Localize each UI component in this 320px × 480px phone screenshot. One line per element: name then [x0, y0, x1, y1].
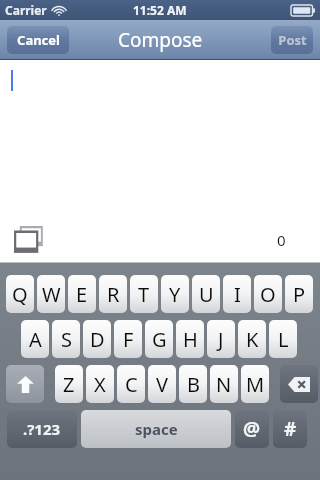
staticText: F [123, 326, 134, 353]
button[interactable]: G [145, 320, 173, 358]
staticText: K [246, 326, 259, 353]
button[interactable]: F [114, 320, 142, 358]
staticText: P [293, 281, 306, 308]
button[interactable]: J [207, 320, 235, 358]
staticText: space [135, 419, 178, 439]
button[interactable]: A [21, 320, 49, 358]
staticText: Post [278, 31, 307, 49]
staticText: J [218, 326, 224, 353]
staticText: O [260, 281, 276, 308]
button[interactable]: Y [161, 275, 189, 313]
button[interactable]: .?123 [7, 410, 77, 448]
staticText: A [29, 326, 42, 353]
button[interactable]: N [210, 365, 238, 403]
staticText: W [42, 281, 61, 308]
button[interactable]: @ [235, 410, 269, 448]
button[interactable]: D [83, 320, 111, 358]
button[interactable]: H [176, 320, 204, 358]
button[interactable]: V [148, 365, 176, 403]
button[interactable]: U [192, 275, 220, 313]
staticText: Compose [118, 27, 203, 53]
staticText: S [61, 326, 72, 353]
button[interactable]: B [179, 365, 207, 403]
staticText: C [125, 371, 138, 398]
staticText: T [138, 281, 150, 308]
staticText: @ [243, 416, 261, 442]
staticText: E [76, 281, 88, 308]
button[interactable]: Q [6, 275, 34, 313]
button[interactable]: Shift [6, 365, 44, 403]
staticText: V [156, 371, 168, 398]
button[interactable]: K [238, 320, 266, 358]
button[interactable]: E [68, 275, 96, 313]
button[interactable]: T [130, 275, 158, 313]
button[interactable]: P [285, 275, 313, 313]
staticText: D [90, 326, 105, 353]
staticText: G [152, 326, 167, 353]
staticText: 11:52 AM [133, 2, 187, 18]
staticText: Cancel [17, 31, 60, 49]
button[interactable]: Backspace [280, 365, 318, 403]
staticText: M [246, 371, 265, 398]
staticText: # [284, 416, 297, 442]
staticText: N [216, 371, 232, 398]
button[interactable]: C [117, 365, 145, 403]
button[interactable]: M [241, 365, 269, 403]
staticText: R [107, 281, 120, 308]
staticText: L [278, 326, 289, 353]
button[interactable]: Cancel [7, 26, 69, 54]
staticText: Carrier [5, 2, 47, 18]
staticText: Z [63, 371, 75, 398]
button[interactable]: L [269, 320, 297, 358]
staticText: H [183, 326, 198, 353]
button[interactable]: Add photos [10, 220, 50, 260]
staticText: I [234, 281, 241, 308]
button[interactable]: X [86, 365, 114, 403]
staticText: X [94, 371, 106, 398]
button[interactable]: O [254, 275, 282, 313]
button[interactable]: I [223, 275, 251, 313]
button[interactable]: space [81, 410, 231, 448]
staticText: 0 [277, 230, 286, 250]
button[interactable]: # [273, 410, 307, 448]
staticText: Y [169, 281, 181, 308]
staticText: .?123 [23, 419, 61, 439]
staticText: U [199, 281, 214, 308]
button[interactable]: S [52, 320, 80, 358]
staticText: Q [12, 281, 28, 308]
button[interactable]: Post [271, 26, 313, 54]
button[interactable]: R [99, 275, 127, 313]
button[interactable]: Z [55, 365, 83, 403]
button[interactable]: W [37, 275, 65, 313]
staticText: B [187, 371, 200, 398]
